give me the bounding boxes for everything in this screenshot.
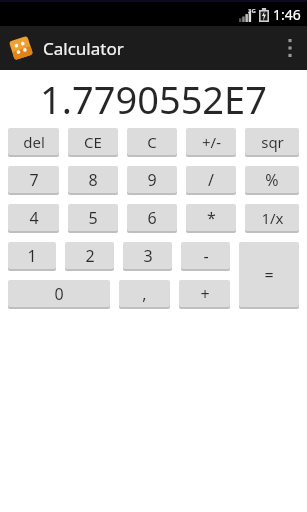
staticText: sqr <box>261 132 284 152</box>
staticText: + <box>200 283 210 305</box>
staticText: , <box>142 283 147 305</box>
staticText: 4 <box>29 207 39 229</box>
button[interactable]: / <box>186 166 236 195</box>
staticText: Calculator <box>43 37 124 60</box>
staticText: 5 <box>88 207 98 229</box>
staticText: 1/x <box>261 208 284 228</box>
button[interactable]: 2 <box>65 242 114 271</box>
staticText: 7 <box>29 169 39 191</box>
staticText: 1 <box>27 245 37 267</box>
button[interactable]: 3 <box>123 242 172 271</box>
staticText: C <box>147 132 157 152</box>
staticText: 8 <box>88 169 98 191</box>
button[interactable]: del <box>8 128 59 157</box>
button[interactable]: = <box>239 242 299 309</box>
staticText: = <box>264 264 274 286</box>
button[interactable]: CE <box>68 128 118 157</box>
button[interactable]: 4 <box>8 204 59 233</box>
button[interactable]: 6 <box>127 204 177 233</box>
button[interactable]: * <box>186 204 236 233</box>
button[interactable]: + <box>179 280 230 309</box>
staticText: 1:46 <box>273 5 301 24</box>
button[interactable]: sqr <box>245 128 299 157</box>
staticText: / <box>208 169 214 191</box>
button[interactable]: 8 <box>68 166 118 195</box>
button[interactable]: 5 <box>68 204 118 233</box>
button[interactable]: 1/x <box>245 204 299 233</box>
staticText: % <box>265 169 279 191</box>
staticText: +/- <box>202 132 221 152</box>
staticText: - <box>203 245 209 267</box>
staticText: 2 <box>85 245 95 267</box>
button[interactable]: 0 <box>8 280 110 309</box>
staticText: 6 <box>147 207 157 229</box>
staticText: 0 <box>54 283 64 305</box>
button[interactable]: More options <box>273 26 307 70</box>
button[interactable]: 9 <box>127 166 177 195</box>
button[interactable]: % <box>245 166 299 195</box>
staticText: 3G <box>248 7 256 15</box>
staticText: 3 <box>143 245 153 267</box>
staticText: 9 <box>147 169 157 191</box>
button[interactable]: C <box>127 128 177 157</box>
staticText: 1.7790552E7 <box>40 73 267 125</box>
button[interactable]: 7 <box>8 166 59 195</box>
button[interactable]: , <box>119 280 170 309</box>
staticText: del <box>23 132 45 152</box>
staticText: CE <box>84 132 102 152</box>
button[interactable]: 1 <box>8 242 56 271</box>
button[interactable]: +/- <box>186 128 236 157</box>
button[interactable]: - <box>181 242 230 271</box>
staticText: * <box>207 207 216 229</box>
